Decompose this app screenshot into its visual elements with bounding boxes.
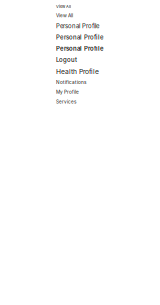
staticText: Personal Profile	[56, 34, 104, 41]
staticText: View All	[56, 13, 73, 18]
staticText: Logout	[56, 56, 77, 64]
staticText: Personal Profile	[56, 45, 104, 52]
staticText: Notifications	[56, 80, 86, 85]
staticText: Services	[56, 99, 76, 104]
staticText: Personal Profile	[56, 22, 99, 30]
staticText: Health Profile	[56, 67, 99, 76]
staticText: View All	[56, 4, 71, 9]
staticText: My Profile	[56, 89, 79, 95]
